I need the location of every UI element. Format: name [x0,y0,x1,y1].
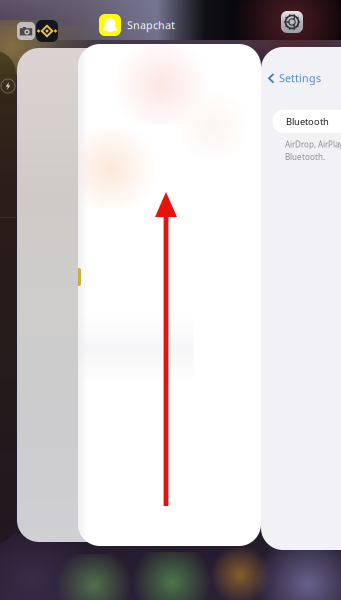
button[interactable]: Camera [0,50,16,545]
button[interactable]: Camera [17,22,35,40]
button[interactable]: Settings [281,11,303,33]
button[interactable]: Binance [36,20,58,42]
button[interactable]: Bluetooth [273,110,341,133]
button[interactable]: Settings [261,47,341,550]
button[interactable]: App [17,48,203,542]
button[interactable]: Snapchat [99,14,175,36]
staticText: Snapchat [127,18,175,32]
staticText: Bluetooth [286,115,329,128]
staticText: Settings [279,71,321,85]
staticText: AirDrop, AirPlay, B [285,139,341,150]
button[interactable]: Snapchat [78,44,261,546]
staticText: Bluetooth. [285,152,325,162]
button[interactable]: Settings [266,69,323,87]
